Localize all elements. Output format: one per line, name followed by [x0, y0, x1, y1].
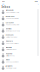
staticText: Ben Brooks: [6, 16, 15, 17]
button[interactable]: Finn Ford: [0, 39, 40, 45]
button[interactable]: Dan Diaz: [0, 27, 40, 33]
staticText: Thanks so much for: [6, 24, 20, 26]
staticText: Dan Diaz: [6, 28, 12, 30]
staticText: Iris Ito: [6, 59, 10, 61]
staticText: Jack Jones: [6, 65, 13, 67]
staticText: Alice Adams: [6, 9, 14, 11]
button[interactable]: Hugo Hall: [0, 52, 40, 58]
button[interactable]: Eve Evans: [0, 33, 40, 39]
staticText: See you soon then: [6, 61, 19, 63]
staticText: That's a great idea: [6, 42, 19, 44]
button[interactable]: Iris Ito: [0, 58, 40, 64]
staticText: On my way over now: [6, 30, 20, 32]
staticText: Inbox: [1, 5, 10, 9]
staticText: Got it, thank you: [6, 55, 15, 57]
staticText: Eve Evans: [6, 34, 14, 36]
staticText: Edit: [1, 3, 3, 5]
staticText: ▪▪▪: [35, 1, 38, 2]
staticText: Let me check that: [6, 36, 17, 38]
button[interactable]: Edit: [1, 3, 3, 5]
staticText: 9:41: [2, 1, 5, 2]
button[interactable]: Alice Adams: [0, 8, 40, 14]
staticText: Hugo Hall: [6, 53, 12, 55]
staticText: Cara Chen: [6, 22, 14, 24]
staticText: Sounds good to me: [6, 18, 19, 19]
staticText: Call me later today: [6, 49, 17, 50]
staticText: Gina Gold: [6, 47, 12, 48]
button[interactable]: Cara Chen: [0, 21, 40, 27]
staticText: See you tomorrow!: [6, 11, 19, 13]
staticText: Perfect, let's do it: [6, 67, 16, 69]
button[interactable]: Ben Brooks: [0, 14, 40, 21]
button[interactable]: Gina Gold: [0, 45, 40, 52]
staticText: Finn Ford: [6, 40, 13, 42]
button[interactable]: Jack Jones: [0, 64, 40, 70]
